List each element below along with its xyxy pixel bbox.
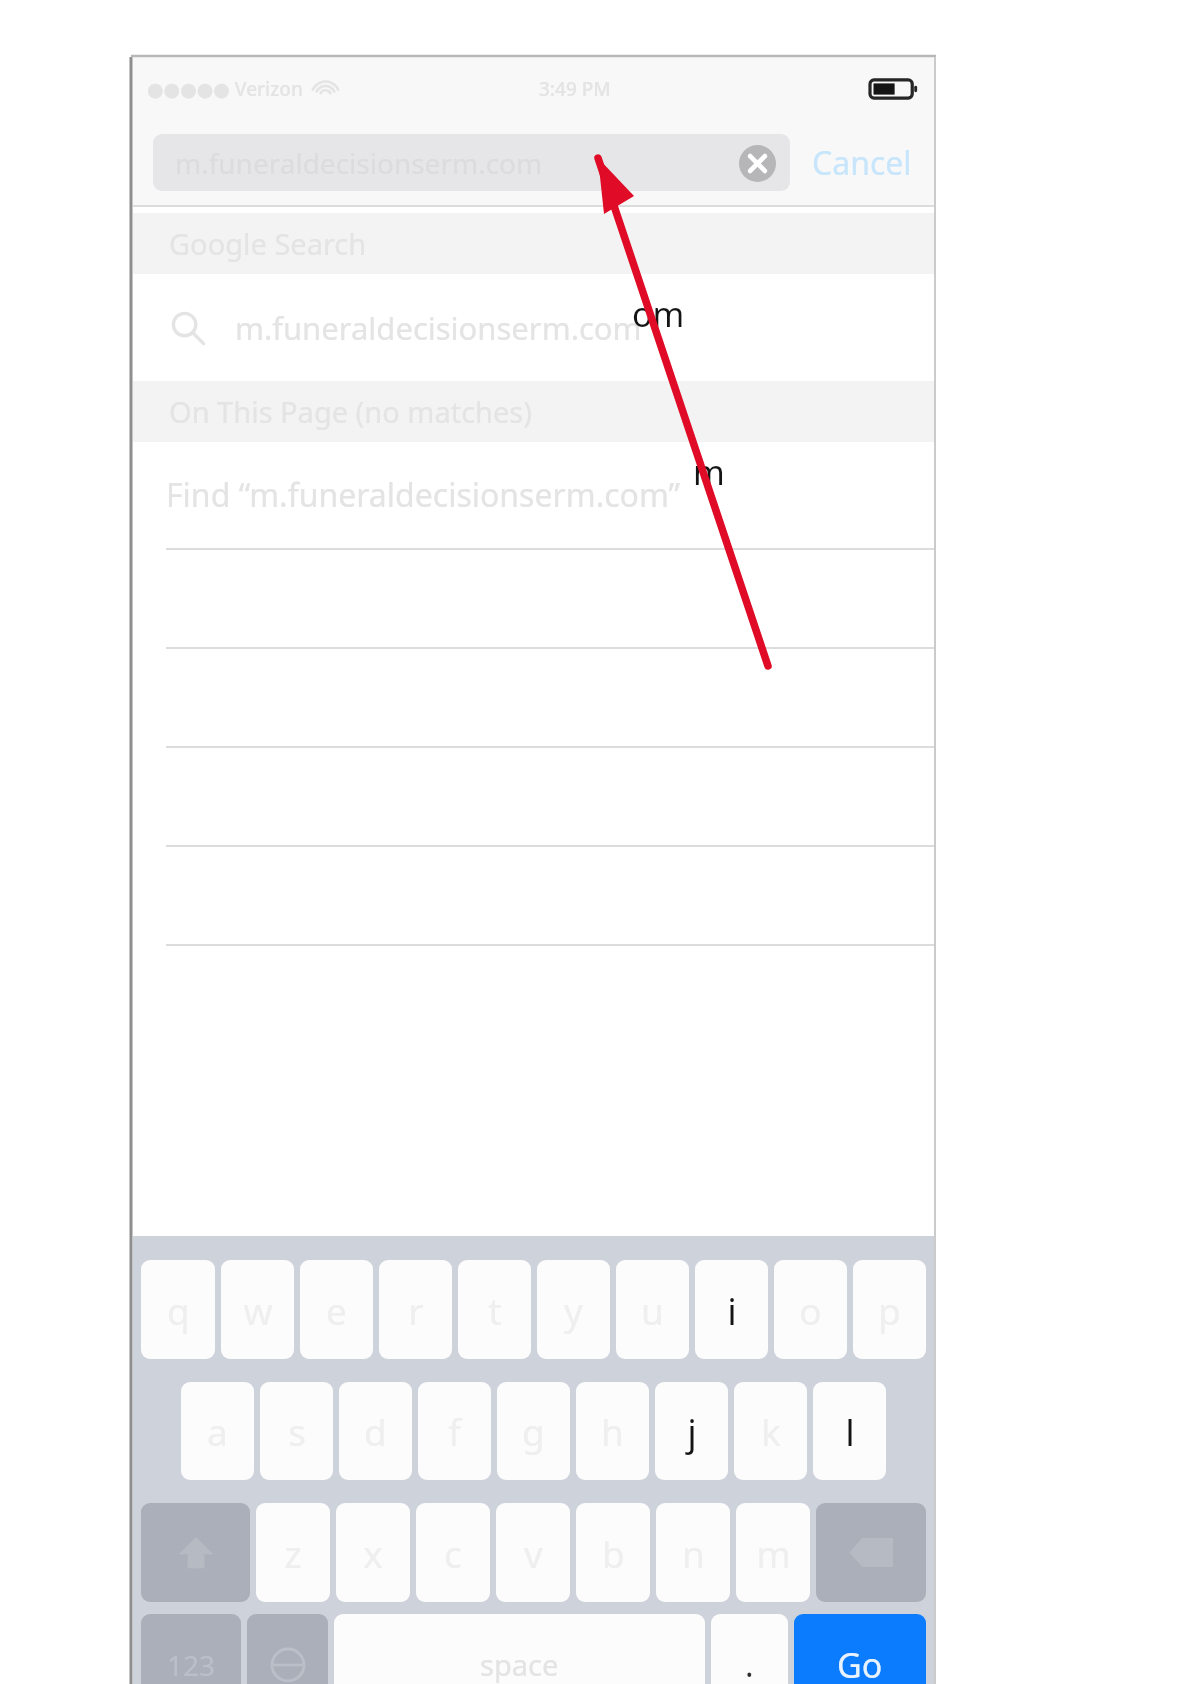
button[interactable]: z [256,1503,330,1602]
button[interactable]: Cancel [790,141,918,185]
button[interactable] [133,550,934,647]
staticText: Cancel [812,141,912,185]
staticText: w [243,1285,273,1335]
staticText: 123 [167,1646,216,1684]
staticText: l [845,1406,855,1456]
staticText: g [522,1406,545,1456]
button[interactable]: g [497,1382,570,1480]
staticText: c [444,1528,462,1578]
button[interactable]: c [416,1503,490,1602]
staticText: v [524,1528,543,1578]
button[interactable]: Shift [141,1503,250,1602]
button[interactable]: s [260,1382,333,1480]
staticText: s [288,1406,306,1456]
staticText: n [682,1528,705,1578]
staticText: m.funeraldecisionserm.com [175,144,543,182]
button[interactable]: v [496,1503,570,1602]
button[interactable]: j [655,1382,728,1480]
button[interactable]: x [336,1503,410,1602]
button[interactable]: Find “m.funeraldecisionserm.com” [133,442,934,548]
staticText: e [326,1285,347,1335]
staticText: m [693,449,725,495]
staticText: k [761,1406,781,1456]
staticText: p [878,1285,901,1335]
staticText: x [363,1528,383,1578]
button[interactable]: o [774,1260,847,1359]
button[interactable]: . [711,1614,788,1684]
staticText: z [284,1528,302,1578]
staticText: b [602,1528,625,1578]
staticText: o [799,1285,822,1335]
staticText: t [488,1285,502,1335]
button[interactable]: b [576,1503,650,1602]
staticText: On This Page (no matches) [169,392,532,431]
button[interactable] [133,649,934,746]
button[interactable]: e [300,1260,373,1359]
button[interactable]: space [334,1614,705,1684]
button[interactable]: r [379,1260,452,1359]
button[interactable]: u [616,1260,689,1359]
button[interactable]: h [576,1382,649,1480]
staticText: space [480,1645,559,1684]
button[interactable]: 123 [141,1614,241,1684]
button[interactable]: y [537,1260,610,1359]
button[interactable]: m [736,1503,810,1602]
button[interactable]: k [734,1382,807,1480]
staticText: Find “m.funeraldecisionserm.com” [166,473,681,517]
button[interactable]: Clear text [736,142,778,184]
staticText: ●●●●● Verizon [147,76,303,102]
staticText: f [448,1406,461,1456]
button[interactable]: Go [794,1614,926,1684]
button[interactable]: Delete [816,1503,926,1602]
staticText: m.funeraldecisionserm.com [235,307,642,349]
button[interactable]: m.funeraldecisionserm.com [133,274,934,381]
staticText: y [564,1285,583,1335]
staticText: u [641,1285,664,1335]
button[interactable]: m.funeraldecisionserm.com [153,134,790,191]
button[interactable]: i [695,1260,768,1359]
staticText: Google Search [169,224,367,263]
button[interactable]: l [813,1382,886,1480]
button[interactable]: n [656,1503,730,1602]
staticText: r [408,1285,424,1335]
button[interactable]: p [853,1260,926,1359]
button[interactable]: q [141,1260,215,1359]
button[interactable]: d [339,1382,412,1480]
staticText: d [364,1406,387,1456]
staticText: m [756,1528,791,1578]
button[interactable]: a [181,1382,254,1480]
staticText: 3:49 PM [539,76,611,102]
staticText: j [687,1406,697,1456]
staticText: a [207,1406,228,1456]
staticText: q [167,1285,190,1335]
button[interactable]: t [458,1260,531,1359]
staticText: om [632,291,685,337]
staticText: . [745,1643,754,1684]
staticText: i [727,1285,737,1335]
staticText: Go [837,1642,883,1684]
button[interactable]: f [418,1382,491,1480]
staticText: h [601,1406,624,1456]
button[interactable]: w [221,1260,294,1359]
button[interactable]: Switch keyboard [247,1614,328,1684]
